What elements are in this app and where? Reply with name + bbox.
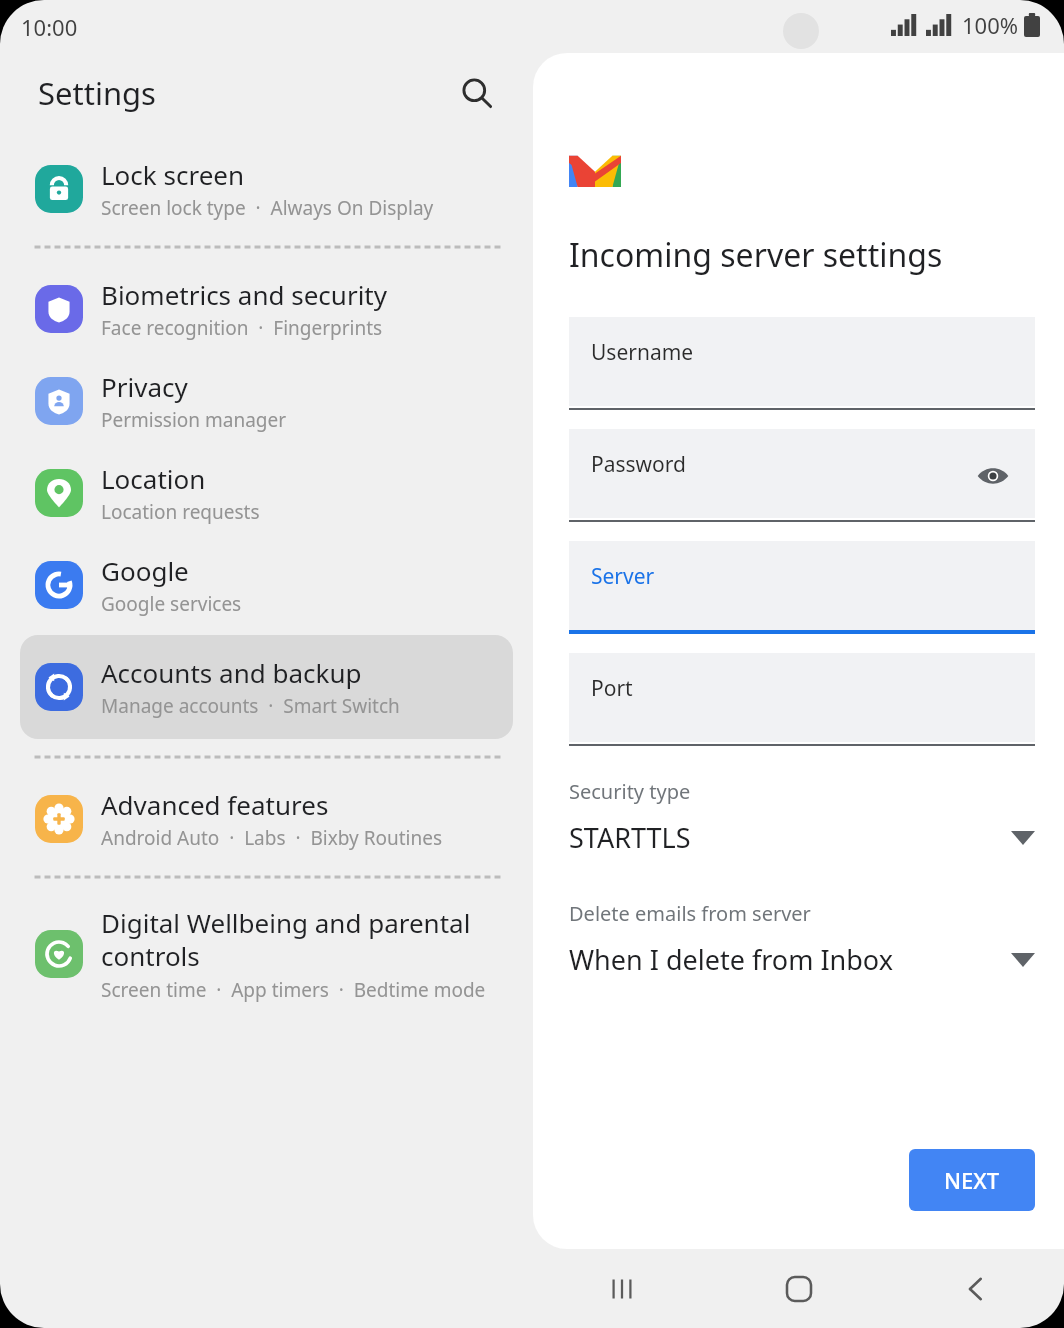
button[interactable]: Back	[887, 1249, 1064, 1328]
staticText: Username	[591, 338, 694, 367]
staticText: Biometrics and security	[101, 277, 388, 312]
staticText: 100%	[962, 10, 1019, 40]
staticText: Android Auto · Labs · Bixby Routines	[101, 825, 443, 851]
staticText: Google	[101, 553, 189, 588]
button[interactable]: Privacy	[0, 369, 533, 433]
staticText: Port	[591, 674, 633, 703]
button[interactable]: Search	[449, 65, 505, 121]
staticText: 10:00	[21, 12, 78, 42]
button[interactable]: Show password	[973, 456, 1013, 496]
button[interactable]: Lock screen	[0, 157, 533, 221]
button[interactable]: Recents	[533, 1249, 710, 1328]
button[interactable]: Advanced features	[0, 787, 533, 851]
staticText: NEXT	[944, 1165, 1000, 1195]
staticText: Advanced features	[101, 787, 329, 822]
button[interactable]: Biometrics and security	[0, 277, 533, 341]
staticText: STARTTLS	[569, 819, 691, 856]
button[interactable]: Delete emails from server	[569, 900, 1035, 978]
button[interactable]: Username	[569, 317, 1035, 410]
staticText: Face recognition · Fingerprints	[101, 315, 383, 341]
staticText: Location	[101, 461, 206, 496]
button[interactable]: Port	[569, 653, 1035, 746]
button[interactable]: Home	[710, 1249, 887, 1328]
button[interactable]: Accounts and backup	[20, 635, 513, 739]
staticText: Security type	[569, 778, 691, 805]
button[interactable]: Digital Wellbeing and parental controls	[0, 905, 533, 1003]
staticText: Location requests	[101, 499, 260, 525]
button[interactable]: Password	[569, 429, 1035, 522]
staticText: Screen lock type · Always On Display	[101, 195, 434, 221]
button[interactable]: Location	[0, 461, 533, 525]
staticText: Privacy	[101, 369, 188, 404]
staticText: Manage accounts · Smart Switch	[101, 693, 400, 719]
staticText: Server	[591, 562, 655, 591]
staticText: Password	[591, 450, 686, 479]
button[interactable]: Google	[0, 553, 533, 617]
button[interactable]: Server	[569, 541, 1035, 634]
staticText: Accounts and backup	[101, 655, 362, 690]
staticText: Permission manager	[101, 407, 287, 433]
button[interactable]: Security type	[569, 778, 1035, 856]
staticText: Screen time · App timers · Bedtime mode	[101, 977, 486, 1003]
staticText: Delete emails from server	[569, 900, 811, 927]
staticText: Incoming server settings	[569, 233, 943, 277]
staticText: Lock screen	[101, 157, 245, 192]
staticText: Settings	[38, 72, 156, 114]
button[interactable]: NEXT	[909, 1149, 1035, 1211]
staticText: When I delete from Inbox	[569, 941, 893, 978]
staticText: Google services	[101, 591, 242, 617]
staticText: Digital Wellbeing and parental controls	[101, 905, 471, 974]
